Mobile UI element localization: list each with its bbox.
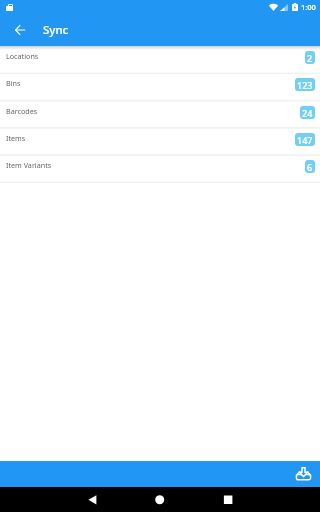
button[interactable]: Items bbox=[0, 128, 320, 155]
button[interactable]: Bins bbox=[0, 73, 320, 100]
staticText: Locations bbox=[6, 51, 39, 61]
staticText: 1:00 bbox=[301, 2, 316, 12]
staticText: Bins bbox=[6, 78, 21, 88]
button[interactable]: Item Variants bbox=[0, 155, 320, 182]
staticText: 147 bbox=[297, 134, 313, 146]
staticText: Items bbox=[6, 133, 26, 143]
staticText: Sync bbox=[43, 22, 69, 38]
staticText: 2 bbox=[307, 52, 313, 64]
button[interactable]: Back bbox=[0, 14, 36, 46]
staticText: 123 bbox=[297, 79, 313, 91]
staticText: 24 bbox=[302, 107, 313, 119]
staticText: 6 bbox=[307, 161, 313, 173]
button[interactable]: Barcodes bbox=[0, 101, 320, 128]
button[interactable]: Download bbox=[296, 461, 318, 487]
staticText: Barcodes bbox=[6, 106, 38, 116]
button[interactable]: Locations bbox=[0, 46, 320, 73]
staticText: Item Variants bbox=[6, 160, 52, 170]
